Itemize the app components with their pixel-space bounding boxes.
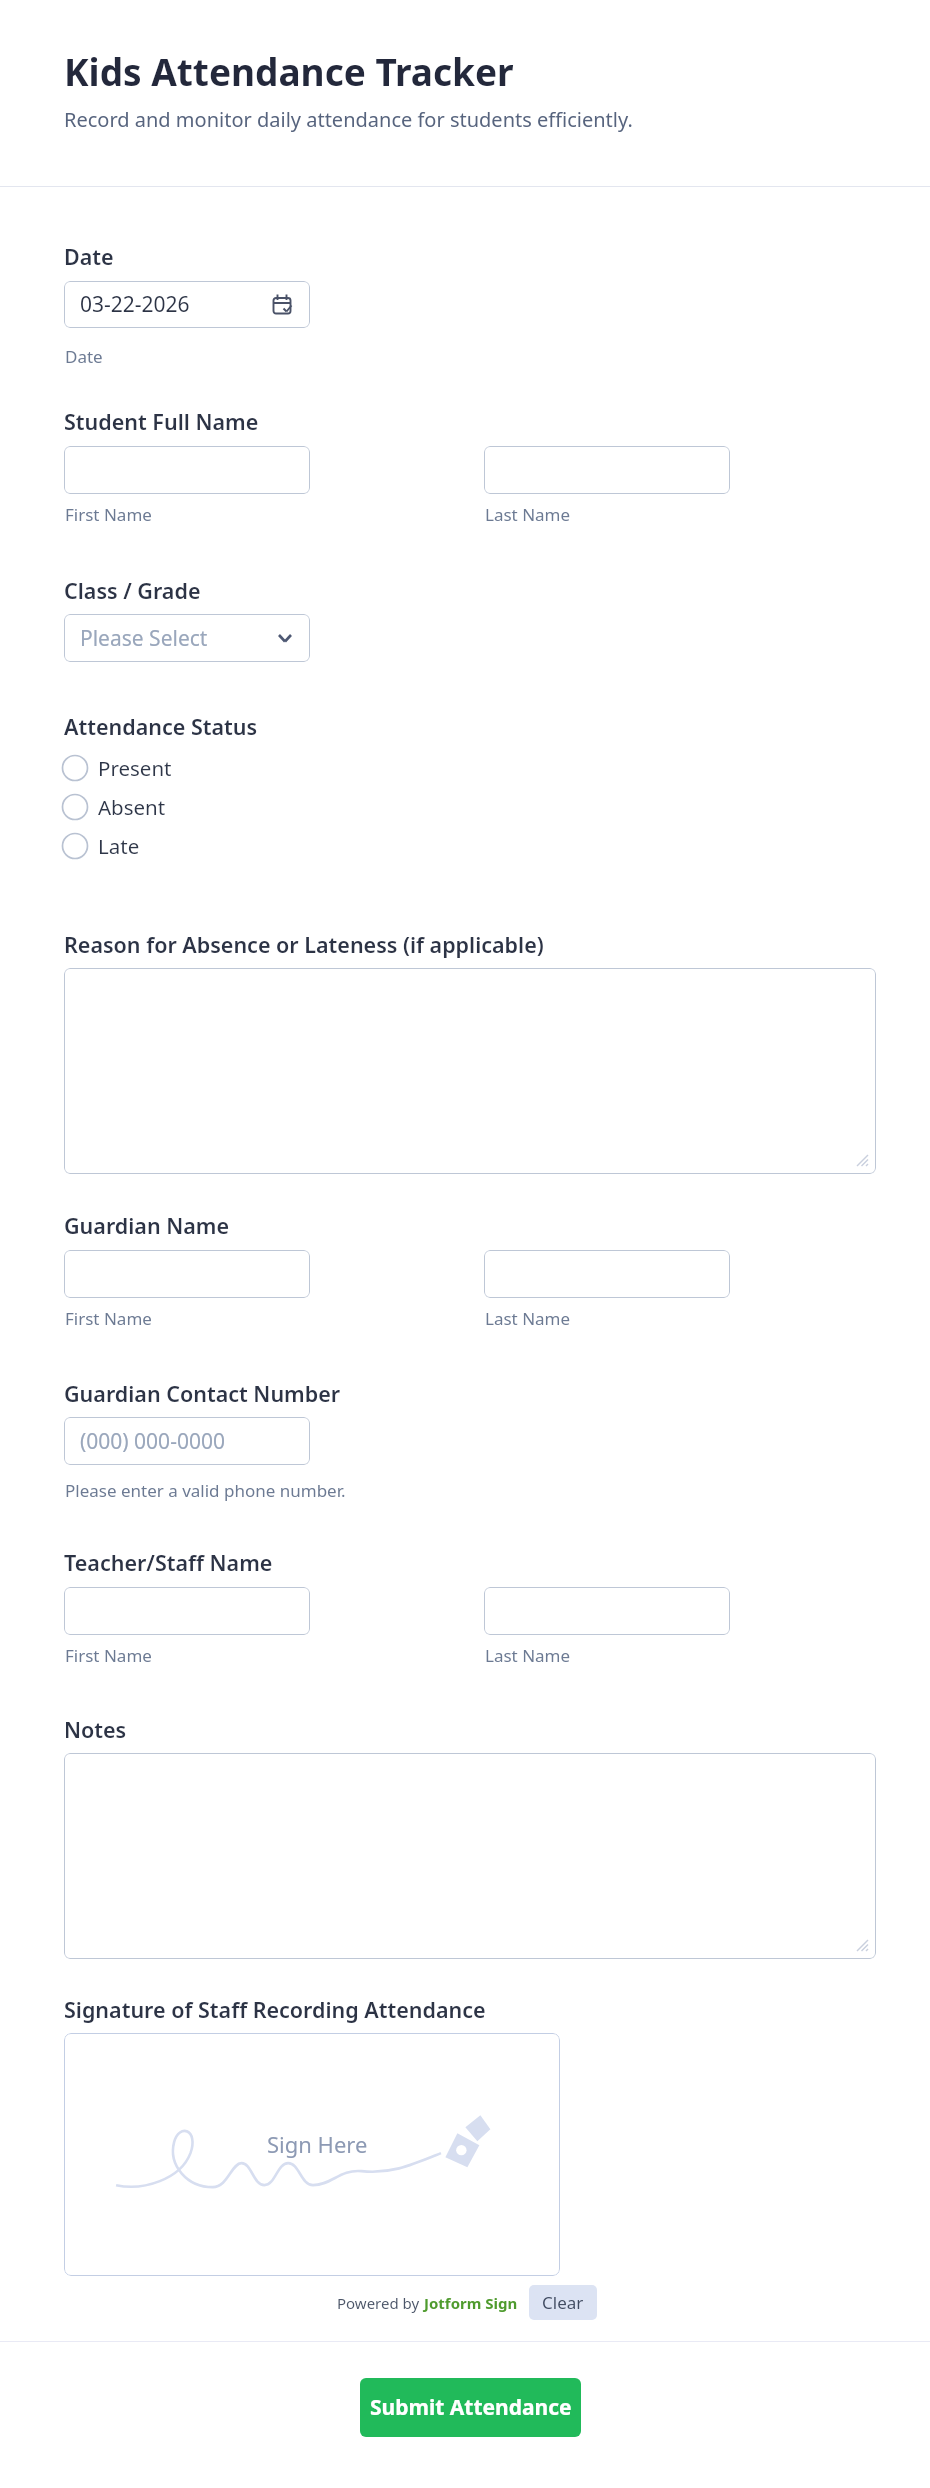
staticText: Last Name <box>485 1307 571 1330</box>
button[interactable] <box>64 1250 310 1298</box>
staticText: Last Name <box>485 1644 571 1667</box>
button[interactable]: Signature pad. Sign here. <box>64 2033 560 2276</box>
button[interactable]: Absent <box>60 790 166 824</box>
button[interactable]: Present <box>60 751 172 785</box>
staticText: Guardian Contact Number <box>64 1379 341 1408</box>
button[interactable]: (000) 000-0000 <box>64 1417 310 1465</box>
button[interactable] <box>64 968 876 1174</box>
staticText: Please Select <box>80 624 208 653</box>
staticText: Date <box>64 242 114 271</box>
staticText: Guardian Name <box>64 1211 230 1240</box>
button[interactable]: 03-22-2026 <box>64 281 310 328</box>
button[interactable]: Late <box>60 829 140 863</box>
staticText: Record and monitor daily attendance for … <box>64 106 633 133</box>
staticText: Notes <box>64 1715 127 1744</box>
staticText: (000) 000-0000 <box>80 1427 225 1456</box>
staticText: 03-22-2026 <box>80 290 190 319</box>
staticText: Attendance Status <box>64 712 258 741</box>
staticText: Submit Attendance <box>370 2393 572 2422</box>
staticText: Please enter a valid phone number. <box>65 1479 346 1502</box>
staticText: Last Name <box>485 503 571 526</box>
staticText: Absent <box>98 793 166 821</box>
staticText: Present <box>98 754 172 782</box>
button[interactable]: Clear <box>529 2285 597 2320</box>
staticText: Jotform Sign <box>424 2293 518 2313</box>
button[interactable] <box>484 1587 730 1635</box>
button[interactable] <box>484 1250 730 1298</box>
staticText: Sign Here <box>267 2129 368 2159</box>
button[interactable]: Please Select <box>64 614 310 662</box>
button[interactable]: Pick date <box>270 292 296 318</box>
button[interactable]: Open class list <box>274 627 296 649</box>
staticText: Student Full Name <box>64 407 259 436</box>
staticText: First Name <box>65 1307 152 1330</box>
button[interactable]: Submit Attendance <box>360 2378 581 2437</box>
staticText: Teacher/Staff Name <box>64 1548 273 1577</box>
staticText: Class / Grade <box>64 576 201 605</box>
staticText: Powered by <box>337 2293 424 2313</box>
staticText: Late <box>98 832 140 860</box>
staticText: Signature of Staff Recording Attendance <box>64 1995 486 2024</box>
staticText: Date <box>65 345 103 368</box>
button[interactable] <box>64 1753 876 1959</box>
button[interactable] <box>64 1587 310 1635</box>
button[interactable] <box>484 446 730 494</box>
staticText: Clear <box>542 2291 584 2314</box>
button[interactable] <box>64 446 310 494</box>
staticText: First Name <box>65 503 152 526</box>
staticText: Reason for Absence or Lateness (if appli… <box>64 930 544 959</box>
staticText: Kids Attendance Tracker <box>64 46 514 96</box>
staticText: First Name <box>65 1644 152 1667</box>
